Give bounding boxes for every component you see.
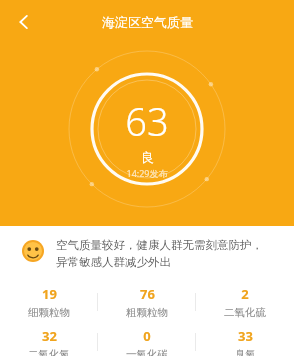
staticText: 19 xyxy=(42,285,57,303)
button[interactable]: 19 xyxy=(0,283,98,321)
staticText: 33 xyxy=(238,327,253,345)
staticText: 二氧化硫 xyxy=(224,306,266,319)
staticText: 二氧化氮 xyxy=(28,348,70,356)
staticText: 76 xyxy=(140,285,155,303)
button[interactable]: 33 xyxy=(196,327,294,356)
staticText: 2 xyxy=(241,285,249,303)
button[interactable]: 返回 xyxy=(4,2,44,42)
staticText: 海淀区空气质量 xyxy=(102,14,193,30)
staticText: 良 xyxy=(141,149,154,165)
staticText: 一氧化碳 xyxy=(126,348,168,356)
button[interactable]: 0 xyxy=(98,327,196,356)
staticText: 63 xyxy=(125,95,169,147)
staticText: 臭氧 xyxy=(235,348,256,356)
staticText: 32 xyxy=(42,327,57,345)
staticText: 0 xyxy=(143,327,151,345)
button[interactable]: 空气质量较好，健康人群无需刻意防护，异常敏感人群减少外出 xyxy=(22,238,270,269)
button[interactable]: 2 xyxy=(196,283,294,321)
staticText: 细颗粒物 xyxy=(28,306,70,319)
staticText: 粗颗粒物 xyxy=(126,306,168,319)
button[interactable]: 32 xyxy=(0,327,98,356)
staticText: 14:29发布 xyxy=(126,167,168,179)
staticText: 空气质量较好，健康人群无需刻意防护，异常敏感人群减少外出 xyxy=(56,238,270,269)
button[interactable]: 76 xyxy=(98,283,196,321)
